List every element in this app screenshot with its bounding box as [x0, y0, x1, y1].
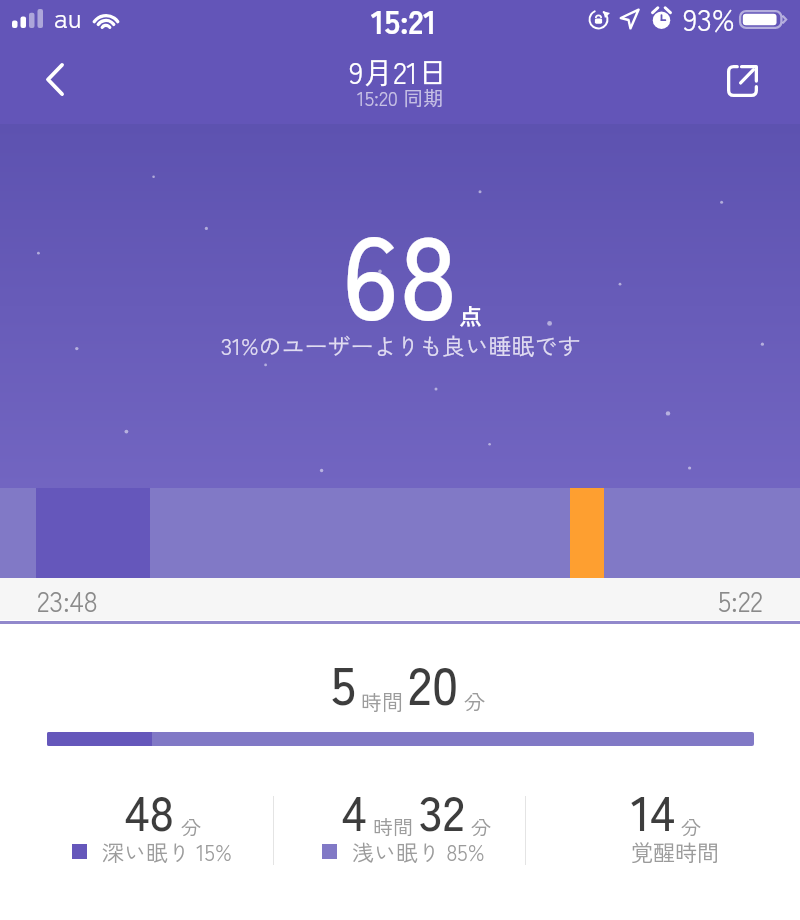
staticText: 14 [631, 774, 675, 845]
staticText: 15:20 同期 [357, 83, 444, 112]
staticText: au [54, 0, 82, 36]
button[interactable]: 4 [342, 774, 505, 877]
staticText: 分 [681, 812, 701, 841]
staticText: 分 [471, 812, 491, 841]
staticText: 分 [464, 686, 485, 716]
button[interactable]: 14 [631, 774, 720, 877]
button[interactable]: Back [10, 53, 102, 117]
staticText: 32 [419, 774, 465, 845]
button[interactable]: 48 [125, 774, 285, 877]
staticText: 68 [342, 187, 458, 354]
staticText: 浅い眠り 85% [352, 835, 485, 867]
staticText: 5:22 [718, 580, 763, 621]
staticText: 48 [125, 774, 175, 845]
staticText: 5 [331, 644, 356, 721]
staticText: 4 [342, 774, 367, 845]
staticText: 時間 [361, 686, 403, 716]
staticText: 93% [683, 0, 735, 39]
staticText: 覚醒時間 [631, 835, 720, 867]
staticText: 点 [459, 298, 482, 331]
staticText: 23:48 [37, 580, 98, 621]
staticText: 9月21日 [349, 49, 449, 92]
staticText: 時間 [373, 812, 413, 841]
staticText: 20 [408, 644, 459, 721]
button[interactable]: Share [696, 53, 788, 117]
staticText: 分 [181, 812, 201, 841]
staticText: 31%のユーザーよりも良い睡眠です [221, 328, 581, 361]
staticText: 深い眠り 15% [102, 835, 232, 867]
staticText: 15:21 [371, 0, 437, 42]
